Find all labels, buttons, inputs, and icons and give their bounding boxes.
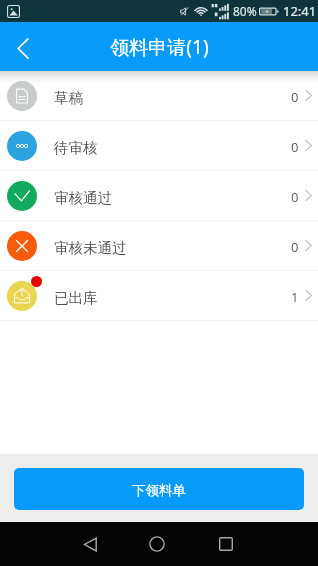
staticText: 审核未通过 — [54, 239, 127, 257]
staticText: 0 — [291, 88, 299, 106]
staticText: 审核通过 — [54, 189, 112, 207]
button[interactable]: 下领料单 — [14, 468, 304, 510]
button[interactable]: 待审核 — [0, 121, 318, 170]
staticText: 已出库 — [54, 289, 98, 307]
button[interactable]: 审核未通过 — [0, 221, 318, 270]
staticText: 0 — [291, 238, 299, 256]
staticText: 0 — [291, 138, 299, 156]
button[interactable]: 已出库 — [0, 271, 318, 320]
staticText: 草稿 — [54, 89, 83, 107]
staticText: 下领料单 — [132, 482, 186, 499]
button[interactable]: 草稿 — [0, 71, 318, 120]
staticText: 1 — [291, 288, 299, 306]
staticText: 0 — [291, 188, 299, 206]
button[interactable]: Back — [66, 522, 114, 566]
button[interactable]: Back — [0, 24, 46, 70]
staticText: 12:41 — [283, 2, 317, 20]
staticText: 80% — [233, 3, 257, 19]
button[interactable]: 审核通过 — [0, 171, 318, 220]
staticText: 领料申请(1) — [110, 34, 209, 60]
button[interactable]: Home — [133, 522, 181, 566]
button[interactable]: Recent apps — [202, 522, 250, 566]
staticText: 待审核 — [54, 139, 98, 157]
